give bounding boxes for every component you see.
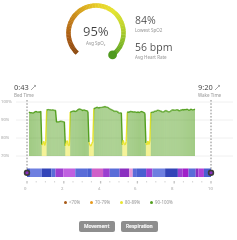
staticText: Bed Time [14,92,34,98]
staticText: 4 [98,186,101,192]
staticText: 0 [24,186,27,192]
staticText: 56 bpm [135,40,173,54]
staticText: 70-79% [95,199,111,205]
button[interactable]: Edit bed time [31,85,36,90]
staticText: 95% [83,22,109,40]
staticText: 9:20 [198,82,213,92]
staticText: 80% [1,135,10,141]
staticText: 90% [1,117,10,123]
staticText: 80-89% [125,199,141,205]
staticText: <70% [69,199,81,205]
staticText: 0:43 [14,82,29,92]
button[interactable]: 80-89% [120,199,141,205]
staticText: 100% [1,99,12,105]
button[interactable]: <70% [64,199,81,205]
button[interactable]: 70-79% [90,199,111,205]
staticText: 2 [61,186,64,192]
staticText: 6 [134,186,137,192]
staticText: Lowest SpO2 [135,27,163,33]
button[interactable]: Movement [79,221,115,232]
staticText: 90-100% [155,199,173,205]
staticText: 84% [135,13,156,27]
button[interactable]: 90-100% [150,199,173,205]
button[interactable]: Edit wake time [215,85,220,90]
button[interactable]: Respiration [121,221,158,232]
staticText: 8 [171,186,174,192]
staticText: 70% [1,153,10,159]
staticText: Movement [84,223,110,230]
staticText: Avg Heart Rate [135,54,167,60]
staticText: Wake Time [198,92,222,98]
staticText: 10 [208,186,213,192]
staticText: Respiration [126,223,153,230]
staticText: Avg SpO₂ [86,40,106,46]
